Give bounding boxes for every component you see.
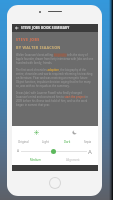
button[interactable]: Alignment [66,158,80,162]
button[interactable]: Medium [30,158,41,162]
staticText: It was Jobs' wife Laurene Powell who fin… [16,91,94,107]
button[interactable]: Sepia [78,139,98,145]
button[interactable]: Night mode [71,129,77,135]
staticText: Sepia [84,140,92,144]
other: Back [15,26,19,30]
staticText: A [88,148,92,156]
staticText: Original [18,140,29,144]
button[interactable]: Day mode [33,129,39,135]
button[interactable]: Light [34,139,56,145]
staticText: Light [42,140,49,144]
button[interactable]: Original [12,139,34,145]
staticText: A [17,149,20,153]
button[interactable]: Font size [51,149,56,154]
staticText: Dark [64,140,71,144]
staticText: STEVE JOBS BOOK SUMMARY [21,26,70,30]
staticText: BY WALTER ISAACSON [16,45,61,50]
button[interactable]: Back [12,24,98,32]
staticText: Walter Isaacson's best-selling biography… [16,53,94,65]
button[interactable]: Dark [56,139,78,145]
staticText: The first work chronicles adoption, the … [16,68,94,88]
staticText: STEVE JOBS [16,37,40,42]
